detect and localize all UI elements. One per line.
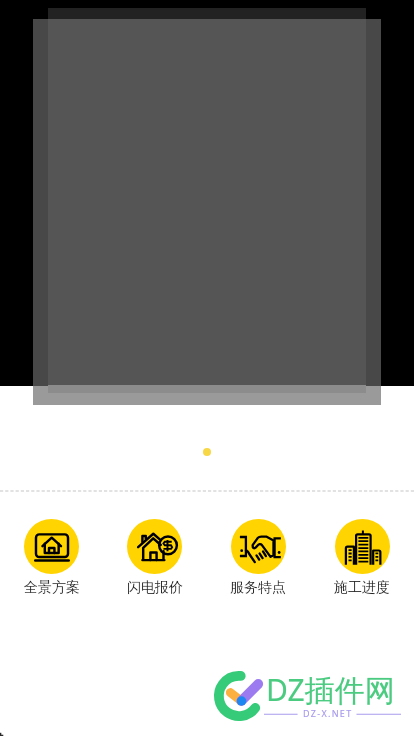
button[interactable]: Page 1 (203, 448, 211, 456)
staticText: 服务特点 (230, 579, 286, 597)
button[interactable]: 服务特点 (206, 519, 310, 597)
staticText: 闪电报价 (127, 579, 183, 597)
staticText: DZ-X.NET (303, 707, 353, 719)
staticText: 全景方案 (24, 579, 80, 597)
button[interactable]: 闪电报价 (103, 519, 206, 597)
button[interactable]: 施工进度 (310, 519, 414, 597)
button[interactable]: Next banner (33, 19, 381, 405)
staticText: DZ插件网 (266, 669, 395, 710)
staticText: 施工进度 (334, 579, 390, 597)
button[interactable]: 全景方案 (0, 519, 103, 597)
button[interactable]: Banner image (48, 8, 366, 393)
